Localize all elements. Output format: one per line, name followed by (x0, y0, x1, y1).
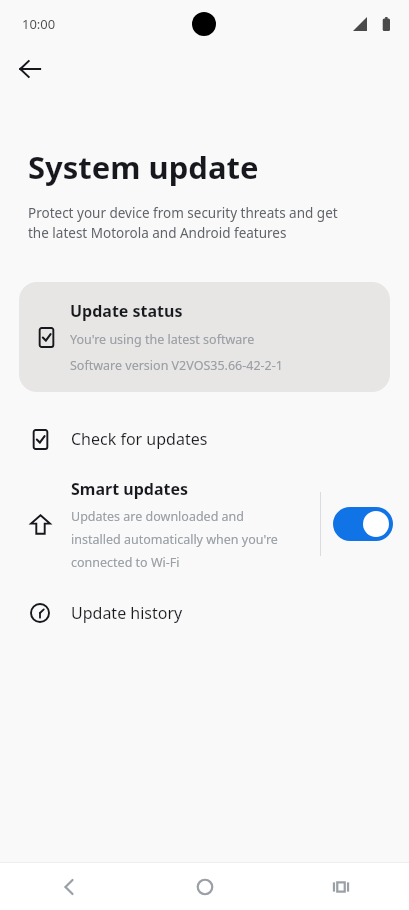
staticText: You're using the latest software (70, 331, 255, 348)
staticText: 10:00 (22, 15, 56, 33)
button[interactable]: Check for updates (0, 414, 409, 464)
staticText: System update (28, 146, 259, 188)
staticText: Protect your device from security threat… (28, 204, 348, 242)
button[interactable]: Back (0, 863, 137, 910)
button[interactable]: Recents (273, 863, 409, 910)
staticText: Check for updates (71, 428, 208, 450)
button[interactable]: Smart updates toggle (333, 507, 393, 541)
button[interactable]: Back (8, 48, 52, 90)
staticText: Software version V2VOS35.66-42-2-1 (70, 357, 283, 374)
button[interactable]: Home (137, 863, 273, 910)
button[interactable]: Update history (0, 588, 409, 638)
staticText: Smart updates (71, 478, 188, 500)
button[interactable]: Update status (19, 282, 390, 392)
staticText: Update status (70, 300, 183, 322)
staticText: Updates are downloaded and installed aut… (71, 508, 287, 571)
staticText: Update history (71, 602, 183, 624)
